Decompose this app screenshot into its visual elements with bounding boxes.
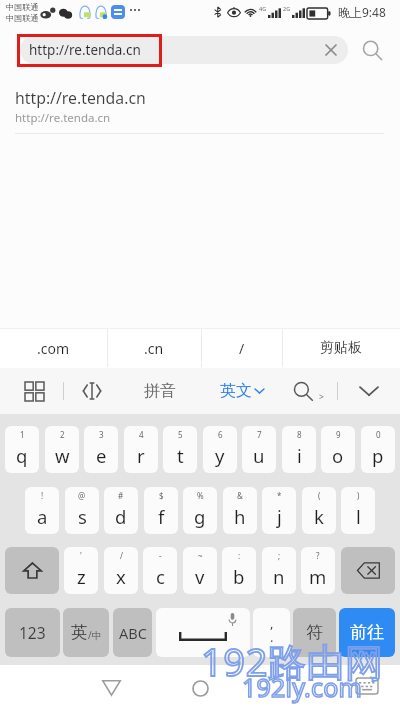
button[interactable]: /: [104, 547, 138, 594]
staticText: http://re.tenda.cn: [15, 110, 111, 126]
staticText: e: [96, 443, 107, 468]
staticText: &: [237, 490, 243, 501]
staticText: 0: [376, 429, 381, 440]
staticText: 8: [297, 429, 302, 440]
button[interactable]: 英: [63, 608, 109, 657]
staticText: z: [77, 564, 86, 589]
staticText: v: [195, 564, 205, 589]
staticText: -: [159, 550, 162, 561]
staticText: 3: [99, 429, 104, 440]
button[interactable]: 2: [45, 426, 79, 473]
staticText: m: [309, 564, 327, 589]
button[interactable]: Shift: [5, 547, 59, 594]
staticText: f: [158, 504, 165, 529]
staticText: x: [116, 564, 126, 589]
staticText: 拼音: [144, 381, 176, 401]
button[interactable]: 0: [361, 426, 395, 473]
staticText: 英文: [220, 381, 252, 401]
button[interactable]: 8: [282, 426, 316, 473]
staticText: .com: [37, 339, 70, 358]
button[interactable]: Search: [361, 39, 384, 62]
button[interactable]: ': [64, 547, 98, 594]
button[interactable]: /: [201, 328, 282, 368]
button[interactable]: .cn: [107, 328, 201, 368]
button[interactable]: .com: [0, 328, 107, 368]
staticText: s: [78, 504, 87, 529]
staticText: %: [197, 490, 204, 501]
staticText: /中: [88, 628, 102, 642]
button[interactable]: 前往: [339, 608, 395, 657]
button[interactable]: 4: [124, 426, 158, 473]
button[interactable]: 5: [163, 426, 197, 473]
staticText: 7: [257, 429, 262, 440]
staticText: 5: [178, 429, 183, 440]
staticText: *: [277, 490, 282, 501]
button[interactable]: 6: [203, 426, 237, 473]
button[interactable]: :: [222, 547, 256, 594]
button[interactable]: -: [143, 547, 177, 594]
staticText: g: [194, 504, 206, 529]
staticText: 英: [71, 622, 88, 643]
staticText: t: [177, 443, 184, 468]
button[interactable]: http://re.tenda.cn: [20, 36, 348, 64]
button[interactable]: $: [144, 487, 178, 534]
button[interactable]: 7: [242, 426, 276, 473]
button[interactable]: Search: [291, 377, 339, 405]
staticText: (: [318, 490, 321, 501]
staticText: u: [253, 443, 265, 468]
button[interactable]: Clear text: [320, 39, 342, 61]
staticText: 前往: [350, 622, 384, 643]
staticText: @: [78, 490, 86, 501]
button[interactable]: 符: [293, 608, 336, 657]
button[interactable]: Hide keyboard: [352, 674, 382, 698]
button[interactable]: ,: [253, 608, 290, 657]
button[interactable]: @: [65, 487, 99, 534]
button[interactable]: 拼音: [130, 377, 190, 405]
staticText: r: [137, 443, 145, 468]
button[interactable]: 9: [321, 426, 355, 473]
button[interactable]: 1: [5, 426, 39, 473]
staticText: http://re.tenda.cn: [15, 87, 146, 109]
staticText: 6: [218, 429, 223, 440]
staticText: c: [156, 564, 165, 589]
button[interactable]: Backspace: [341, 547, 395, 594]
staticText: i: [297, 443, 302, 468]
staticText: p: [372, 443, 384, 468]
staticText: ?: [316, 550, 320, 561]
staticText: l: [356, 504, 361, 529]
staticText: d: [115, 504, 127, 529]
button[interactable]: ;: [262, 547, 296, 594]
button[interactable]: 剪贴板: [282, 328, 400, 368]
staticText: 9: [336, 429, 341, 440]
button[interactable]: 英文: [211, 377, 273, 405]
button[interactable]: Space: [156, 608, 250, 657]
staticText: :: [238, 550, 241, 561]
button[interactable]: %: [183, 487, 217, 534]
button[interactable]: ABC: [113, 608, 152, 657]
staticText: ;: [278, 550, 281, 561]
staticText: .: [270, 628, 274, 646]
staticText: .cn: [144, 339, 164, 358]
button[interactable]: &: [223, 487, 257, 534]
staticText: ,: [270, 614, 274, 632]
button[interactable]: ): [341, 487, 375, 534]
button[interactable]: Back: [93, 670, 129, 706]
button[interactable]: Keyboard layout: [14, 379, 54, 403]
button[interactable]: 3: [84, 426, 118, 473]
staticText: j: [277, 504, 282, 529]
button[interactable]: Hide keyboard: [350, 379, 388, 403]
staticText: 192路由网: [201, 635, 384, 687]
staticText: http://re.tenda.cn: [29, 41, 141, 59]
button[interactable]: http://re.tenda.cn: [0, 79, 400, 134]
button[interactable]: (: [302, 487, 336, 534]
staticText: 4: [139, 429, 144, 440]
button[interactable]: !: [25, 487, 59, 534]
button[interactable]: Home: [182, 670, 218, 706]
button[interactable]: 123: [5, 608, 60, 657]
button[interactable]: #: [104, 487, 138, 534]
button[interactable]: ~: [183, 547, 217, 594]
button[interactable]: Move cursor: [75, 377, 109, 405]
button[interactable]: ?: [301, 547, 335, 594]
button[interactable]: *: [262, 487, 296, 534]
staticText: !: [41, 490, 44, 501]
